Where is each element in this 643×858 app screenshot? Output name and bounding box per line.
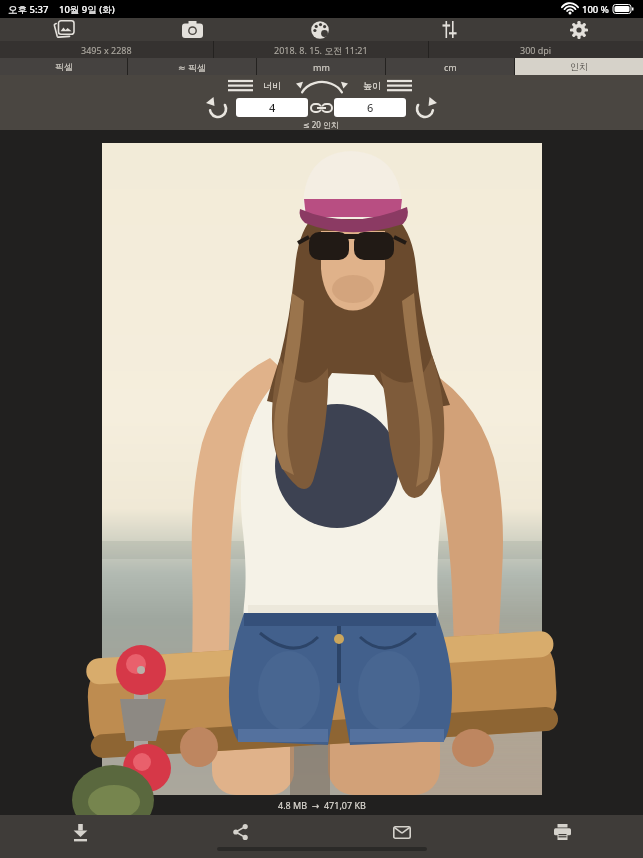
button[interactable]: cm xyxy=(386,58,514,75)
staticText: 10월 9일 (화) xyxy=(59,3,115,16)
staticText: 4.8 MB → 471,07 KB xyxy=(278,799,366,811)
button[interactable] xyxy=(228,79,253,93)
staticText: 2018. 8. 15. 오전 11:21 xyxy=(274,44,368,56)
button[interactable] xyxy=(413,97,437,119)
button[interactable]: 300 dpi xyxy=(429,41,643,58)
button[interactable] xyxy=(160,815,321,849)
button[interactable] xyxy=(385,18,514,41)
button[interactable] xyxy=(321,815,482,849)
staticText: 너비 xyxy=(263,80,281,91)
button[interactable]: 픽셀 xyxy=(0,58,127,75)
button[interactable]: 3495 x 2288 xyxy=(0,41,213,58)
staticText: 높이 xyxy=(363,80,381,91)
staticText: 픽셀 xyxy=(55,61,73,72)
staticText: 4 xyxy=(269,100,276,115)
button[interactable] xyxy=(482,815,643,849)
button[interactable]: 2018. 8. 15. 오전 11:21 xyxy=(214,41,428,58)
button[interactable]: 6 xyxy=(334,98,406,117)
button[interactable]: 인치 xyxy=(515,58,643,75)
button[interactable] xyxy=(256,18,385,41)
staticText: 3495 x 2288 xyxy=(81,44,132,56)
button[interactable] xyxy=(308,99,335,117)
staticText: 오후 5:37 xyxy=(8,3,49,16)
staticText: ≤ 20 인치 xyxy=(303,119,340,130)
staticText: 100 % xyxy=(582,3,609,16)
staticText: cm xyxy=(444,61,457,73)
staticText: mm xyxy=(313,61,330,73)
button[interactable] xyxy=(206,97,230,119)
button[interactable] xyxy=(0,815,160,849)
button[interactable] xyxy=(128,18,256,41)
staticText: 인치 xyxy=(570,61,588,72)
button[interactable] xyxy=(0,18,128,41)
button[interactable]: mm xyxy=(257,58,385,75)
staticText: 6 xyxy=(367,100,374,115)
button[interactable] xyxy=(387,79,412,93)
staticText: ≈ 픽셀 xyxy=(178,61,206,73)
button[interactable] xyxy=(514,18,643,41)
button[interactable]: ≈ 픽셀 xyxy=(128,58,256,75)
button[interactable]: 4 xyxy=(236,98,308,117)
staticText: 300 dpi xyxy=(520,44,552,56)
